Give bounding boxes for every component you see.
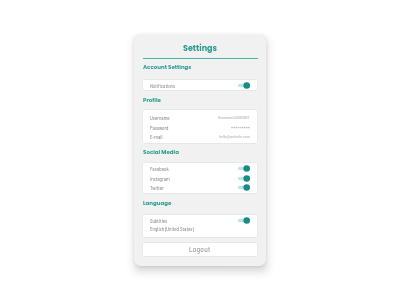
staticText: Username34563297 bbox=[218, 115, 250, 120]
staticText: Profile bbox=[143, 96, 161, 104]
staticText: Subtitles bbox=[150, 218, 168, 224]
button[interactable]: Toggle bbox=[238, 165, 250, 172]
staticText: Settings bbox=[183, 43, 217, 54]
button[interactable]: Toggle bbox=[238, 217, 250, 224]
button[interactable]: Instagram bbox=[142, 174, 258, 183]
staticText: Password bbox=[150, 125, 169, 131]
staticText: Language bbox=[143, 199, 172, 207]
button[interactable]: Notifications bbox=[142, 81, 258, 90]
button[interactable]: Subtitles bbox=[142, 216, 258, 225]
button[interactable]: Logout bbox=[142, 242, 258, 257]
button[interactable]: Toggle bbox=[238, 184, 250, 191]
staticText: Account Settings bbox=[143, 63, 192, 71]
button[interactable]: English (United States) bbox=[142, 224, 258, 233]
button[interactable]: Password bbox=[142, 123, 258, 132]
button[interactable]: Toggle bbox=[238, 82, 250, 89]
button[interactable]: Twitter bbox=[142, 183, 258, 192]
button[interactable]: E-mail bbox=[142, 132, 258, 141]
staticText: Twitter bbox=[150, 185, 164, 191]
staticText: hello@website.com bbox=[219, 134, 250, 139]
staticText: Social Media bbox=[143, 148, 179, 156]
button[interactable]: Username bbox=[142, 113, 258, 122]
button[interactable]: Toggle bbox=[238, 175, 250, 182]
staticText: English (United States) bbox=[150, 226, 194, 232]
staticText: Instagram bbox=[150, 176, 170, 182]
button[interactable]: Facebook bbox=[142, 164, 258, 173]
staticText: Logout bbox=[189, 245, 211, 254]
staticText: Facebook bbox=[150, 166, 169, 172]
staticText: Username bbox=[150, 115, 170, 121]
staticText: E-mail bbox=[150, 134, 163, 140]
staticText: Notifications bbox=[150, 83, 176, 89]
